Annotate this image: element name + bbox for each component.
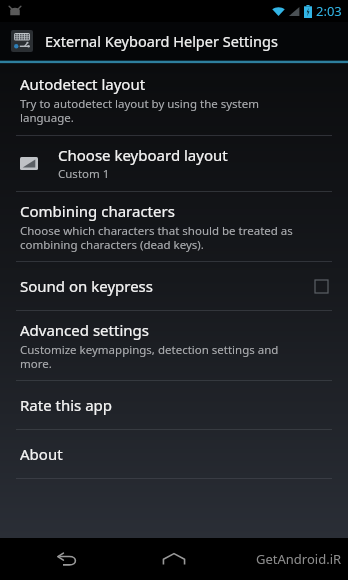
staticText: External Keyboard Helper Settings <box>45 31 278 51</box>
staticText: Try to autodetect layout by using the sy… <box>20 96 259 125</box>
button[interactable]: Keyboard layout <box>0 136 348 191</box>
button[interactable]: Back <box>50 542 84 576</box>
button[interactable]: Home <box>157 542 191 576</box>
staticText: Advanced settings <box>20 320 149 340</box>
staticText: About <box>20 444 63 464</box>
staticText: Rate this app <box>20 395 113 415</box>
button[interactable]: Advanced settings <box>0 311 348 380</box>
staticText: 2:03 <box>316 2 342 20</box>
button[interactable]: Sound on keypress <box>0 262 348 310</box>
button[interactable]: Autodetect layout <box>0 64 348 135</box>
button[interactable]: Combining characters <box>0 192 348 261</box>
other: Keyboard layout <box>20 157 38 170</box>
staticText: GetAndroid.iR <box>256 550 342 568</box>
staticText: Customize keymappings, detection setting… <box>20 342 279 371</box>
staticText: Choose which characters that should be t… <box>20 223 293 252</box>
other: Sound on keypress checkbox <box>315 280 328 293</box>
staticText: Choose keyboard layout <box>58 145 228 165</box>
button[interactable]: Rate this app <box>0 381 348 429</box>
staticText: Autodetect layout <box>20 74 146 94</box>
staticText: Combining characters <box>20 201 175 221</box>
button[interactable]: About <box>0 430 348 478</box>
staticText: Sound on keypress <box>20 276 153 296</box>
staticText: Custom 1 <box>58 166 110 182</box>
